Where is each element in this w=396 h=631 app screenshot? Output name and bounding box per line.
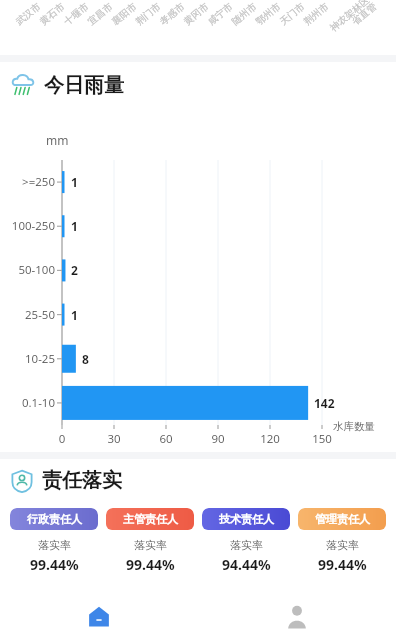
staticText: 100-250: [0, 218, 55, 234]
staticText: 鄂州市: [253, 0, 283, 28]
staticText: 30: [98, 431, 130, 447]
staticText: 黄石市: [37, 0, 67, 28]
staticText: 康掌门·KANGZM.COM: [96, 595, 248, 615]
staticText: 荆州市: [301, 0, 331, 28]
staticText: 行政责任人: [27, 512, 82, 526]
staticText: 随州市: [229, 0, 259, 28]
button[interactable]: Rainfall: [6, 70, 128, 100]
staticText: 0: [46, 431, 78, 447]
button[interactable]: 技术责任人: [202, 508, 290, 583]
staticText: 落实率: [230, 538, 263, 552]
staticText: 孝感市: [157, 0, 187, 28]
staticText: 142: [314, 395, 335, 411]
other: Rainfall: [10, 72, 36, 98]
staticText: mm: [46, 132, 69, 148]
staticText: 黄冈市: [181, 0, 211, 28]
staticText: 1: [71, 307, 78, 323]
staticText: 8: [82, 351, 89, 367]
button[interactable]: 主管责任人: [106, 508, 194, 583]
button[interactable]: Profile: [198, 597, 396, 631]
staticText: 神农架林区: [328, 0, 372, 34]
staticText: 2: [71, 262, 78, 278]
staticText: 150: [306, 431, 338, 447]
staticText: 1: [71, 174, 78, 190]
staticText: 襄阳市: [109, 0, 139, 28]
staticText: 技术责任人: [219, 512, 274, 526]
staticText: 责任落实: [42, 468, 122, 493]
staticText: 0.1-10: [0, 395, 55, 411]
staticText: 99.44%: [318, 555, 367, 574]
other: Responsibility: [10, 469, 34, 493]
staticText: 荆门市: [133, 0, 163, 28]
staticText: 99.44%: [126, 555, 175, 574]
button[interactable]: Responsibility: [6, 466, 126, 495]
staticText: 省直管: [349, 0, 379, 28]
staticText: 天门市: [277, 0, 307, 28]
button[interactable]: 行政责任人: [10, 508, 98, 583]
staticText: 25-50: [0, 307, 55, 323]
staticText: >=250: [0, 174, 55, 190]
staticText: 主管责任人: [123, 512, 178, 526]
staticText: 管理责任人: [315, 512, 370, 526]
staticText: 99.44%: [30, 555, 79, 574]
button[interactable]: Home: [0, 597, 198, 631]
staticText: 水库数量: [333, 420, 375, 433]
staticText: 1: [71, 218, 78, 234]
staticText: 宜昌市: [85, 0, 115, 28]
staticText: 10-25: [0, 351, 55, 367]
staticText: 120: [254, 431, 286, 447]
staticText: 落实率: [134, 538, 167, 552]
staticText: 落实率: [38, 538, 71, 552]
staticText: 落实率: [326, 538, 359, 552]
staticText: 今日雨量: [44, 73, 124, 98]
staticText: 60: [150, 431, 182, 447]
staticText: 90: [202, 431, 234, 447]
staticText: 十堰市: [61, 0, 91, 28]
staticText: 50-100: [0, 262, 55, 278]
staticText: 咸宁市: [205, 0, 235, 28]
button[interactable]: 管理责任人: [298, 508, 386, 583]
staticText: 94.44%: [222, 555, 271, 574]
staticText: 武汉市: [13, 0, 43, 28]
